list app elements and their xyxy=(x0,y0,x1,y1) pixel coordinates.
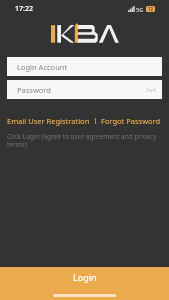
staticText: Email User Registration xyxy=(7,116,90,126)
button[interactable]: Show password xyxy=(144,83,157,96)
staticText: Login xyxy=(73,271,97,283)
staticText: Forgot Password xyxy=(101,116,161,126)
button[interactable]: Email User Registration xyxy=(7,116,90,126)
staticText: Login Account xyxy=(17,62,68,72)
staticText: 5G xyxy=(136,6,144,13)
button[interactable]: Login xyxy=(0,267,169,300)
button[interactable]: Login Account xyxy=(7,57,162,76)
staticText: 17:22 xyxy=(15,4,33,14)
staticText: Password xyxy=(17,85,51,95)
button[interactable]: Password xyxy=(7,80,162,99)
button[interactable]: Forgot Password xyxy=(101,116,161,126)
staticText: Click Login (agree to user agreement and… xyxy=(7,132,160,149)
staticText: 72 xyxy=(148,6,154,12)
